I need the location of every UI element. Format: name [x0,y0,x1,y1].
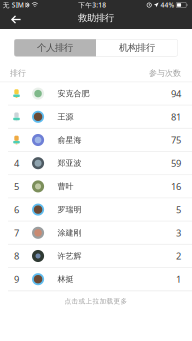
button[interactable]: 5 [0,175,192,198]
staticText: 排行 [10,68,26,78]
staticText: 林挺 [57,274,73,284]
staticText: 6 [14,203,19,216]
staticText: 参与次数 [149,68,181,78]
staticText: 下午3:18 [78,1,106,9]
staticText: 75 [171,134,181,146]
staticText: 曹叶 [57,181,73,191]
button[interactable]: 9 [0,268,192,291]
staticText: 5 [176,203,181,216]
button[interactable]: 点击或上拉加载更多 [0,291,192,311]
staticText: 许艺辉 [57,251,81,261]
staticText: 无 SIM [3,1,24,9]
staticText: 个人排行 [37,42,73,53]
staticText: 机构排行 [119,42,155,53]
staticText: 涂建刚 [57,228,81,238]
staticText: 安克合肥 [57,89,89,98]
staticText: 3 [176,227,181,239]
button[interactable]: 返回 [0,10,29,29]
button[interactable]: 王源 [0,106,192,129]
staticText: 罗瑞明 [57,205,81,214]
button[interactable]: 6 [0,198,192,222]
staticText: 59 [171,157,181,169]
staticText: 44% [161,1,175,9]
staticText: 1 [176,273,181,285]
button[interactable]: 4 [0,152,192,175]
staticText: 郑亚波 [57,158,81,168]
button[interactable]: 8 [0,245,192,268]
staticText: 5 [14,180,19,193]
staticText: 俞星海 [57,135,81,145]
staticText: 2 [176,250,181,262]
staticText: 94 [171,87,181,100]
staticText: 救助排行 [78,12,114,24]
button[interactable]: 机构排行 [96,39,178,56]
button[interactable]: 7 [0,222,192,245]
staticText: 7 [14,227,19,239]
button[interactable]: 个人排行 [14,39,96,56]
staticText: 9 [14,273,19,285]
staticText: 点击或上拉加载更多 [64,297,127,305]
staticText: 王源 [57,112,73,122]
button[interactable]: 俞星海 [0,129,192,152]
staticText: 81 [171,111,181,123]
staticText: 16 [171,180,181,193]
staticText: 8 [14,250,19,262]
button[interactable]: 安克合肥 [0,82,192,106]
staticText: 4 [14,157,19,169]
